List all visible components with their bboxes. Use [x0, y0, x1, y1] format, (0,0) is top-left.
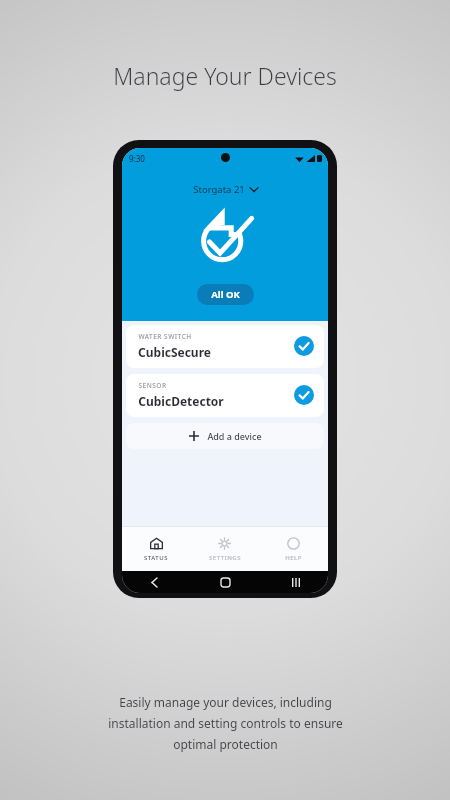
button[interactable]: Recent apps — [286, 572, 306, 592]
staticText: CubicSecure — [138, 344, 211, 360]
staticText: STATUS — [144, 554, 168, 562]
button[interactable]: SENSOR — [126, 374, 324, 417]
button[interactable]: Storgata 21 — [189, 181, 262, 198]
staticText: Easily manage your devices, including — [119, 694, 332, 710]
staticText: SENSOR — [138, 381, 167, 390]
staticText: Manage Your Devices — [113, 60, 337, 91]
button[interactable]: WATER SWITCH — [126, 325, 324, 368]
button[interactable]: Home — [215, 572, 235, 592]
staticText: Storgata 21 — [193, 183, 245, 196]
staticText: All OK — [211, 288, 240, 301]
staticText: HELP — [285, 554, 302, 562]
staticText: CubicDetector — [138, 393, 224, 409]
button[interactable]: SETTINGS — [190, 527, 259, 571]
button[interactable]: All OK — [197, 284, 254, 305]
staticText: 9:30 — [129, 153, 145, 164]
staticText: WATER SWITCH — [138, 332, 192, 341]
staticText: installation and setting controls to ens… — [108, 715, 343, 731]
button[interactable]: HELP — [259, 527, 328, 571]
button[interactable]: STATUS — [122, 527, 190, 571]
staticText: optimal protection — [173, 736, 278, 752]
button[interactable]: Back — [144, 572, 164, 592]
staticText: Add a device — [207, 430, 262, 442]
button[interactable]: Add a device — [126, 423, 324, 449]
staticText: SETTINGS — [209, 554, 241, 562]
